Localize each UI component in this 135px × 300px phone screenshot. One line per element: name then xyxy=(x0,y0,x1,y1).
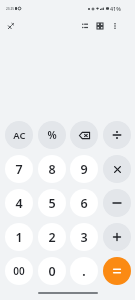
staticText: 5 xyxy=(48,195,56,212)
staticText: 00 xyxy=(13,264,25,278)
staticText: % xyxy=(47,128,57,142)
button[interactable]: AC xyxy=(5,121,33,149)
button[interactable]: Equals xyxy=(103,257,131,285)
staticText: 6 xyxy=(80,195,88,212)
staticText: 1 xyxy=(15,229,23,246)
button[interactable]: Divide xyxy=(103,121,131,149)
button[interactable]: % xyxy=(38,121,66,149)
staticText: 4 xyxy=(15,195,23,212)
staticText: 3 xyxy=(80,229,88,246)
button[interactable]: Plus xyxy=(103,223,131,251)
button[interactable]: 9 xyxy=(70,155,98,183)
button[interactable]: History xyxy=(78,19,92,33)
button[interactable]: Backspace xyxy=(70,121,98,149)
staticText: 23:25 xyxy=(6,7,14,11)
staticText: 41% xyxy=(110,5,121,12)
button[interactable]: . xyxy=(70,257,98,285)
button[interactable]: 4 xyxy=(5,189,33,217)
button[interactable]: Keypad xyxy=(93,19,107,33)
staticText: . xyxy=(82,263,86,279)
button[interactable]: 2 xyxy=(38,223,66,251)
button[interactable]: 5 xyxy=(38,189,66,217)
button[interactable]: Scientific mode xyxy=(3,18,19,34)
staticText: 0 xyxy=(48,263,56,280)
staticText: 7 xyxy=(15,161,23,178)
staticText: 2 xyxy=(48,229,56,246)
button[interactable]: 1 xyxy=(5,223,33,251)
button[interactable]: 3 xyxy=(70,223,98,251)
button[interactable]: More options xyxy=(108,19,122,33)
button[interactable]: 0 xyxy=(38,257,66,285)
button[interactable]: 00 xyxy=(5,257,33,285)
button[interactable]: 7 xyxy=(5,155,33,183)
staticText: AC xyxy=(13,129,26,142)
button[interactable]: 8 xyxy=(38,155,66,183)
staticText: 8 xyxy=(48,161,56,178)
button[interactable]: Multiply xyxy=(103,155,131,183)
button[interactable]: Minus xyxy=(103,189,131,217)
staticText: 9 xyxy=(80,161,88,178)
button[interactable]: 6 xyxy=(70,189,98,217)
